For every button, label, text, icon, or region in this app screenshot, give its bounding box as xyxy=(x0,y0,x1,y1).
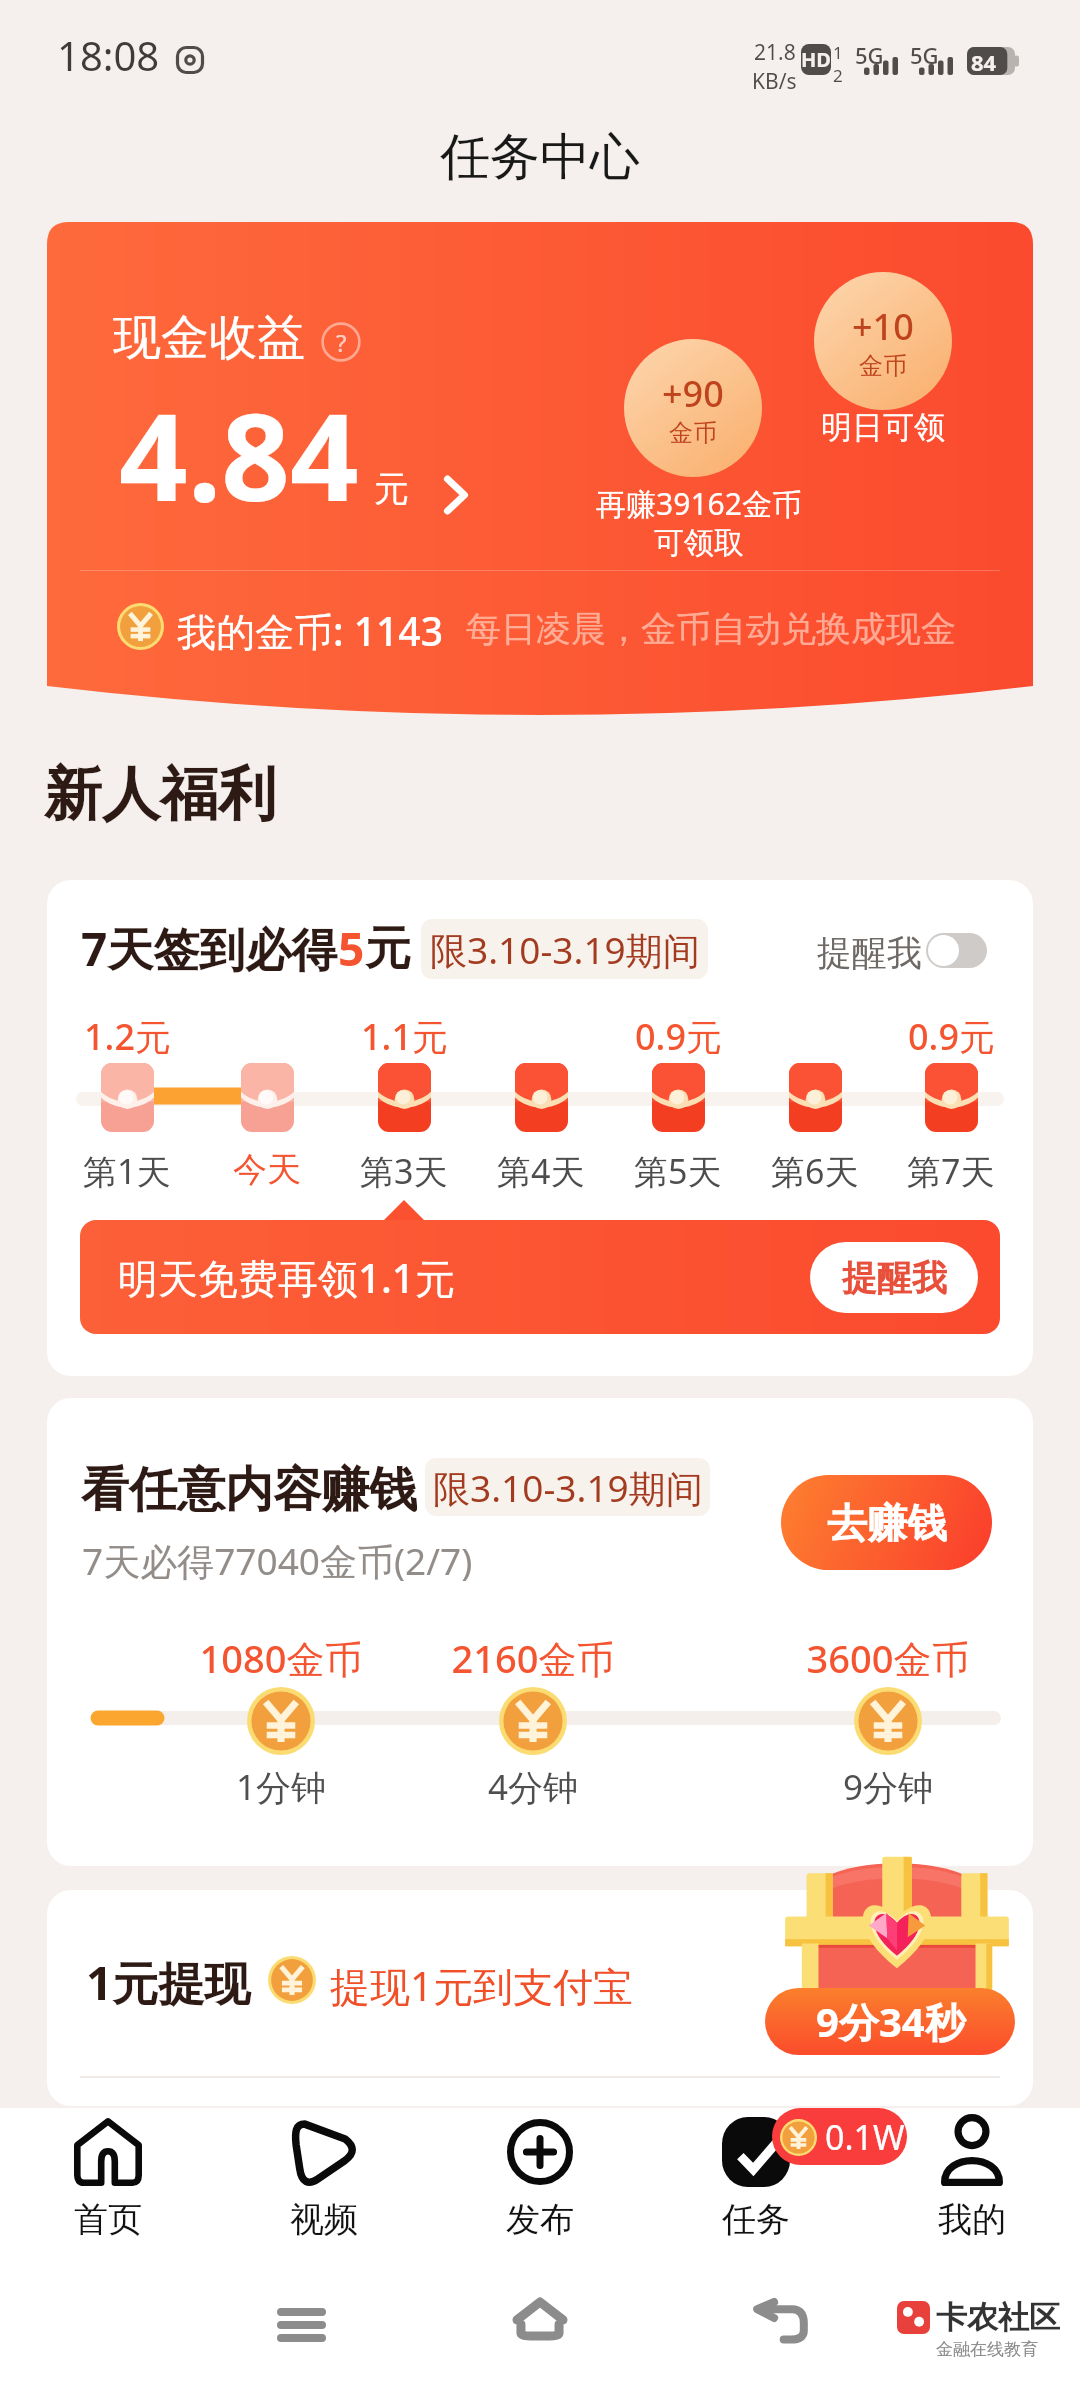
staticText: 5G xyxy=(910,40,939,70)
button[interactable]: +90 xyxy=(624,339,762,477)
staticText: 金币 xyxy=(669,418,717,448)
button[interactable]: Details xyxy=(440,474,474,516)
button[interactable]: 视频 xyxy=(216,2108,432,2248)
staticText: 新人福利 xyxy=(44,758,276,831)
staticText: 9分34秒 xyxy=(816,1994,965,2049)
staticText: 第7天 xyxy=(907,1148,995,1194)
staticText: 4分钟 xyxy=(423,1763,643,1811)
button[interactable]: +10 xyxy=(814,272,952,410)
button[interactable]: 3600金币 xyxy=(778,1632,998,1811)
button[interactable]: 第4天 xyxy=(472,1009,610,1194)
button[interactable]: 第6天 xyxy=(746,1009,884,1194)
staticText: 18:08 xyxy=(57,28,160,82)
staticText: HD xyxy=(801,46,831,73)
staticText: 0.9元 xyxy=(908,1012,995,1061)
button[interactable]: 提醒我 xyxy=(810,1242,978,1313)
staticText: 0.1W xyxy=(825,2114,905,2160)
staticText: 看任意内容赚钱 xyxy=(81,1460,417,1520)
button[interactable]: 1.1元 xyxy=(335,1009,473,1194)
button[interactable]: 9分34秒 xyxy=(765,1988,1015,2055)
button[interactable]: 明天免费再领1.1元 xyxy=(80,1220,1000,1334)
staticText: 第4天 xyxy=(497,1148,585,1194)
staticText: 第5天 xyxy=(634,1148,722,1194)
staticText: 发布 xyxy=(506,2198,574,2241)
staticText: 去赚钱 xyxy=(827,1498,947,1548)
staticText: 提醒我 xyxy=(842,1256,947,1300)
staticText: 7天必得77040金币(2/7) xyxy=(82,1535,473,1586)
staticText: 卡农社区 xyxy=(936,2298,1060,2337)
staticText: 今天 xyxy=(233,1148,301,1191)
staticText: 再赚39162金币 xyxy=(559,483,839,524)
staticText: 7天签到必得 xyxy=(81,917,338,980)
staticText: 可领取 xyxy=(559,524,839,562)
staticText: 1 xyxy=(833,41,843,64)
staticText: 任务中心 xyxy=(440,126,640,189)
staticText: +10 xyxy=(852,302,914,351)
staticText: 1080金币 xyxy=(171,1632,391,1684)
staticText: 84 xyxy=(971,47,997,75)
button[interactable]: 1080金币 xyxy=(171,1632,391,1811)
staticText: 提现1元到支付宝 xyxy=(330,1958,633,2013)
staticText: 我的金币: 1143 xyxy=(177,604,443,657)
staticText: 1.1元 xyxy=(361,1012,448,1061)
staticText: 第1天 xyxy=(83,1148,171,1194)
staticText: 限3.10-3.19期间 xyxy=(433,1462,703,1513)
staticText: 金融在线教育 xyxy=(936,2339,1038,2360)
button[interactable]: 去赚钱 xyxy=(781,1475,992,1570)
staticText: 首页 xyxy=(74,2198,142,2241)
button[interactable]: 发布 xyxy=(432,2108,648,2248)
staticText: 0.9元 xyxy=(635,1012,722,1061)
staticText: ? xyxy=(336,326,347,359)
button[interactable]: 我的 xyxy=(864,2108,1080,2248)
staticText: 第6天 xyxy=(771,1148,859,1194)
staticText: 9分钟 xyxy=(778,1763,998,1811)
button[interactable]: Back xyxy=(733,2292,827,2352)
staticText: 任务 xyxy=(722,2198,790,2241)
staticText: +90 xyxy=(662,369,724,418)
button[interactable]: 0.9元 xyxy=(882,1009,1020,1194)
staticText: 2 xyxy=(833,64,843,87)
staticText: 明天免费再领1.1元 xyxy=(118,1250,455,1305)
staticText: 提醒我 xyxy=(817,931,922,975)
staticText: 明日可领 xyxy=(783,408,983,447)
staticText: 4.84 xyxy=(119,373,359,536)
staticText: 5 xyxy=(338,917,365,980)
staticText: 2160金币 xyxy=(423,1632,643,1684)
button[interactable]: Remind me toggle xyxy=(926,933,987,968)
staticText: 第3天 xyxy=(360,1148,448,1194)
button[interactable]: Coin balance 0.1W xyxy=(772,2108,907,2165)
staticText: 5G xyxy=(855,40,884,70)
staticText: 1元提现 xyxy=(86,1951,251,2014)
staticText: 1.2元 xyxy=(84,1012,171,1061)
button[interactable]: 2160金币 xyxy=(423,1632,643,1811)
staticText: 元 xyxy=(365,920,411,978)
staticText: 元 xyxy=(374,467,409,511)
button[interactable]: Home xyxy=(493,2289,587,2349)
staticText: 金币 xyxy=(859,351,907,381)
staticText: 3600金币 xyxy=(778,1632,998,1684)
button[interactable]: 今天 xyxy=(198,1009,336,1191)
staticText: 视频 xyxy=(290,2198,358,2241)
staticText: 限3.10-3.19期间 xyxy=(430,924,700,975)
staticText: 1分钟 xyxy=(171,1763,391,1811)
button[interactable]: 1.2元 xyxy=(58,1009,196,1194)
staticText: 21.8 xyxy=(754,38,796,67)
button[interactable]: 首页 xyxy=(0,2108,216,2248)
staticText: 每日凌晨，金币自动兑换成现金 xyxy=(466,607,956,651)
button[interactable]: 任务 xyxy=(648,2108,864,2248)
button[interactable]: 0.9元 xyxy=(609,1009,747,1194)
button[interactable]: Recents xyxy=(254,2294,348,2354)
staticText: 我的 xyxy=(938,2198,1006,2241)
staticText: KB/s xyxy=(752,67,797,96)
staticText: 现金收益 xyxy=(113,308,305,368)
